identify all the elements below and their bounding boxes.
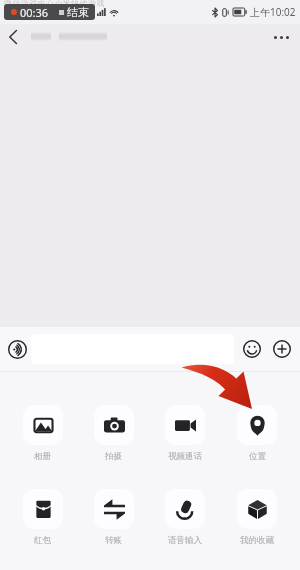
staticText: 视频通话: [168, 451, 202, 462]
button[interactable]: 我的收藏: [221, 489, 293, 546]
staticText: 我的收藏: [240, 535, 274, 546]
button[interactable]: 语音输入: [149, 489, 221, 546]
staticText: 上午10:02: [250, 5, 296, 19]
button[interactable]: More functions: [272, 339, 292, 359]
button[interactable]: Back: [1, 25, 25, 49]
staticText: 红包: [34, 535, 51, 546]
staticText: 结束: [67, 5, 89, 19]
button[interactable]: 视频通话: [149, 405, 221, 462]
staticText: 00:36: [20, 5, 49, 20]
button[interactable]: Voice message: [7, 339, 27, 359]
button[interactable]: 拍摄: [78, 405, 149, 462]
button[interactable]: 红包: [7, 489, 78, 546]
button[interactable]: More options: [270, 26, 292, 48]
staticText: 相册: [34, 451, 51, 462]
staticText: 转账: [105, 535, 122, 546]
button[interactable]: 位置: [221, 405, 293, 462]
staticText: 位置: [249, 451, 266, 462]
button[interactable]: Emoji: [242, 339, 262, 359]
button[interactable]: 转账: [78, 489, 149, 546]
staticText: 语音输入: [168, 535, 202, 546]
button[interactable]: 相册: [7, 405, 78, 462]
staticText: 微信游戏中心小米快传游戏: [4, 0, 105, 8]
staticText: 拍摄: [105, 451, 122, 462]
